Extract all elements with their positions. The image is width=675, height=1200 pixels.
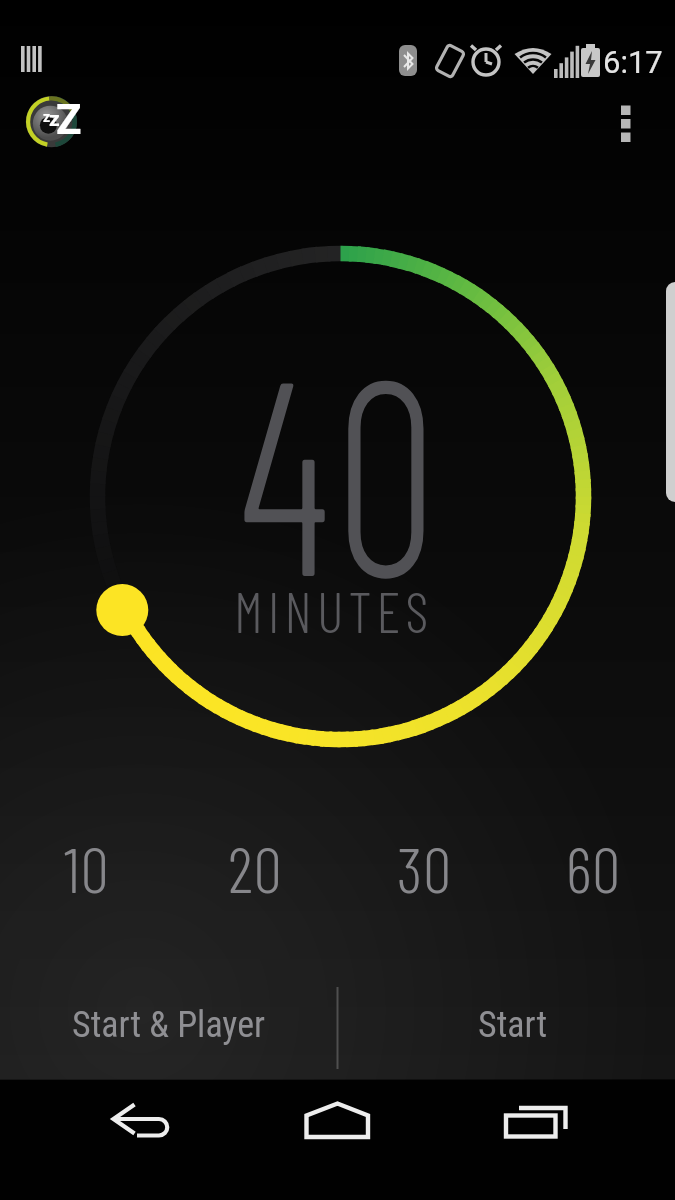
staticText: 60: [566, 830, 622, 906]
staticText: 10: [64, 830, 110, 906]
button[interactable]: [277, 1085, 397, 1155]
button[interactable]: 20: [171, 808, 340, 928]
staticText: 30: [397, 830, 453, 906]
button[interactable]: z: [24, 94, 82, 152]
button[interactable]: [80, 1085, 200, 1155]
button[interactable]: 60: [509, 808, 675, 928]
staticText: 6:17: [603, 44, 663, 80]
button[interactable]: 10: [3, 808, 171, 928]
staticText: Start: [478, 1004, 548, 1046]
button[interactable]: 30: [340, 808, 509, 928]
staticText: Start & Player: [72, 1004, 265, 1046]
staticText: 20: [228, 830, 283, 906]
staticText: z: [49, 107, 60, 132]
staticText: 40: [239, 301, 442, 591]
staticText: Z: [56, 95, 82, 144]
button[interactable]: [475, 1085, 595, 1155]
staticText: MINUTES: [234, 577, 434, 637]
button[interactable]: Start & Player: [0, 975, 337, 1075]
button[interactable]: Start: [350, 975, 675, 1075]
staticText: z: [43, 109, 51, 125]
button[interactable]: [600, 90, 652, 160]
